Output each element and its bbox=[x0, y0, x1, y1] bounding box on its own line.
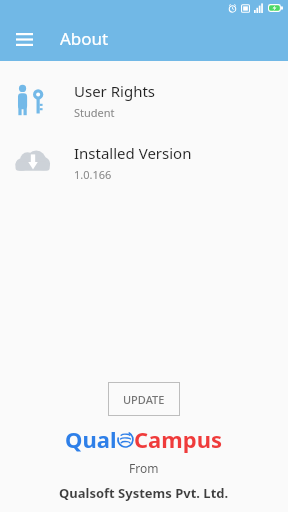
staticText: About bbox=[60, 27, 109, 50]
staticText: Qual bbox=[65, 424, 117, 454]
button[interactable]: Open navigation menu bbox=[9, 24, 39, 54]
button[interactable]: Installed Version bbox=[0, 131, 288, 193]
staticText: Student bbox=[74, 105, 115, 120]
staticText: Campus bbox=[134, 424, 223, 454]
button[interactable]: User Rights bbox=[0, 69, 288, 131]
staticText: Qualsoft Systems Pvt. Ltd. bbox=[59, 484, 229, 502]
staticText: 1.0.166 bbox=[74, 167, 112, 182]
staticText: User Rights bbox=[74, 81, 156, 101]
staticText: From bbox=[129, 460, 159, 476]
staticText: UPDATE bbox=[123, 392, 165, 407]
button[interactable]: UPDATE bbox=[108, 382, 180, 416]
staticText: Installed Version bbox=[74, 143, 192, 163]
